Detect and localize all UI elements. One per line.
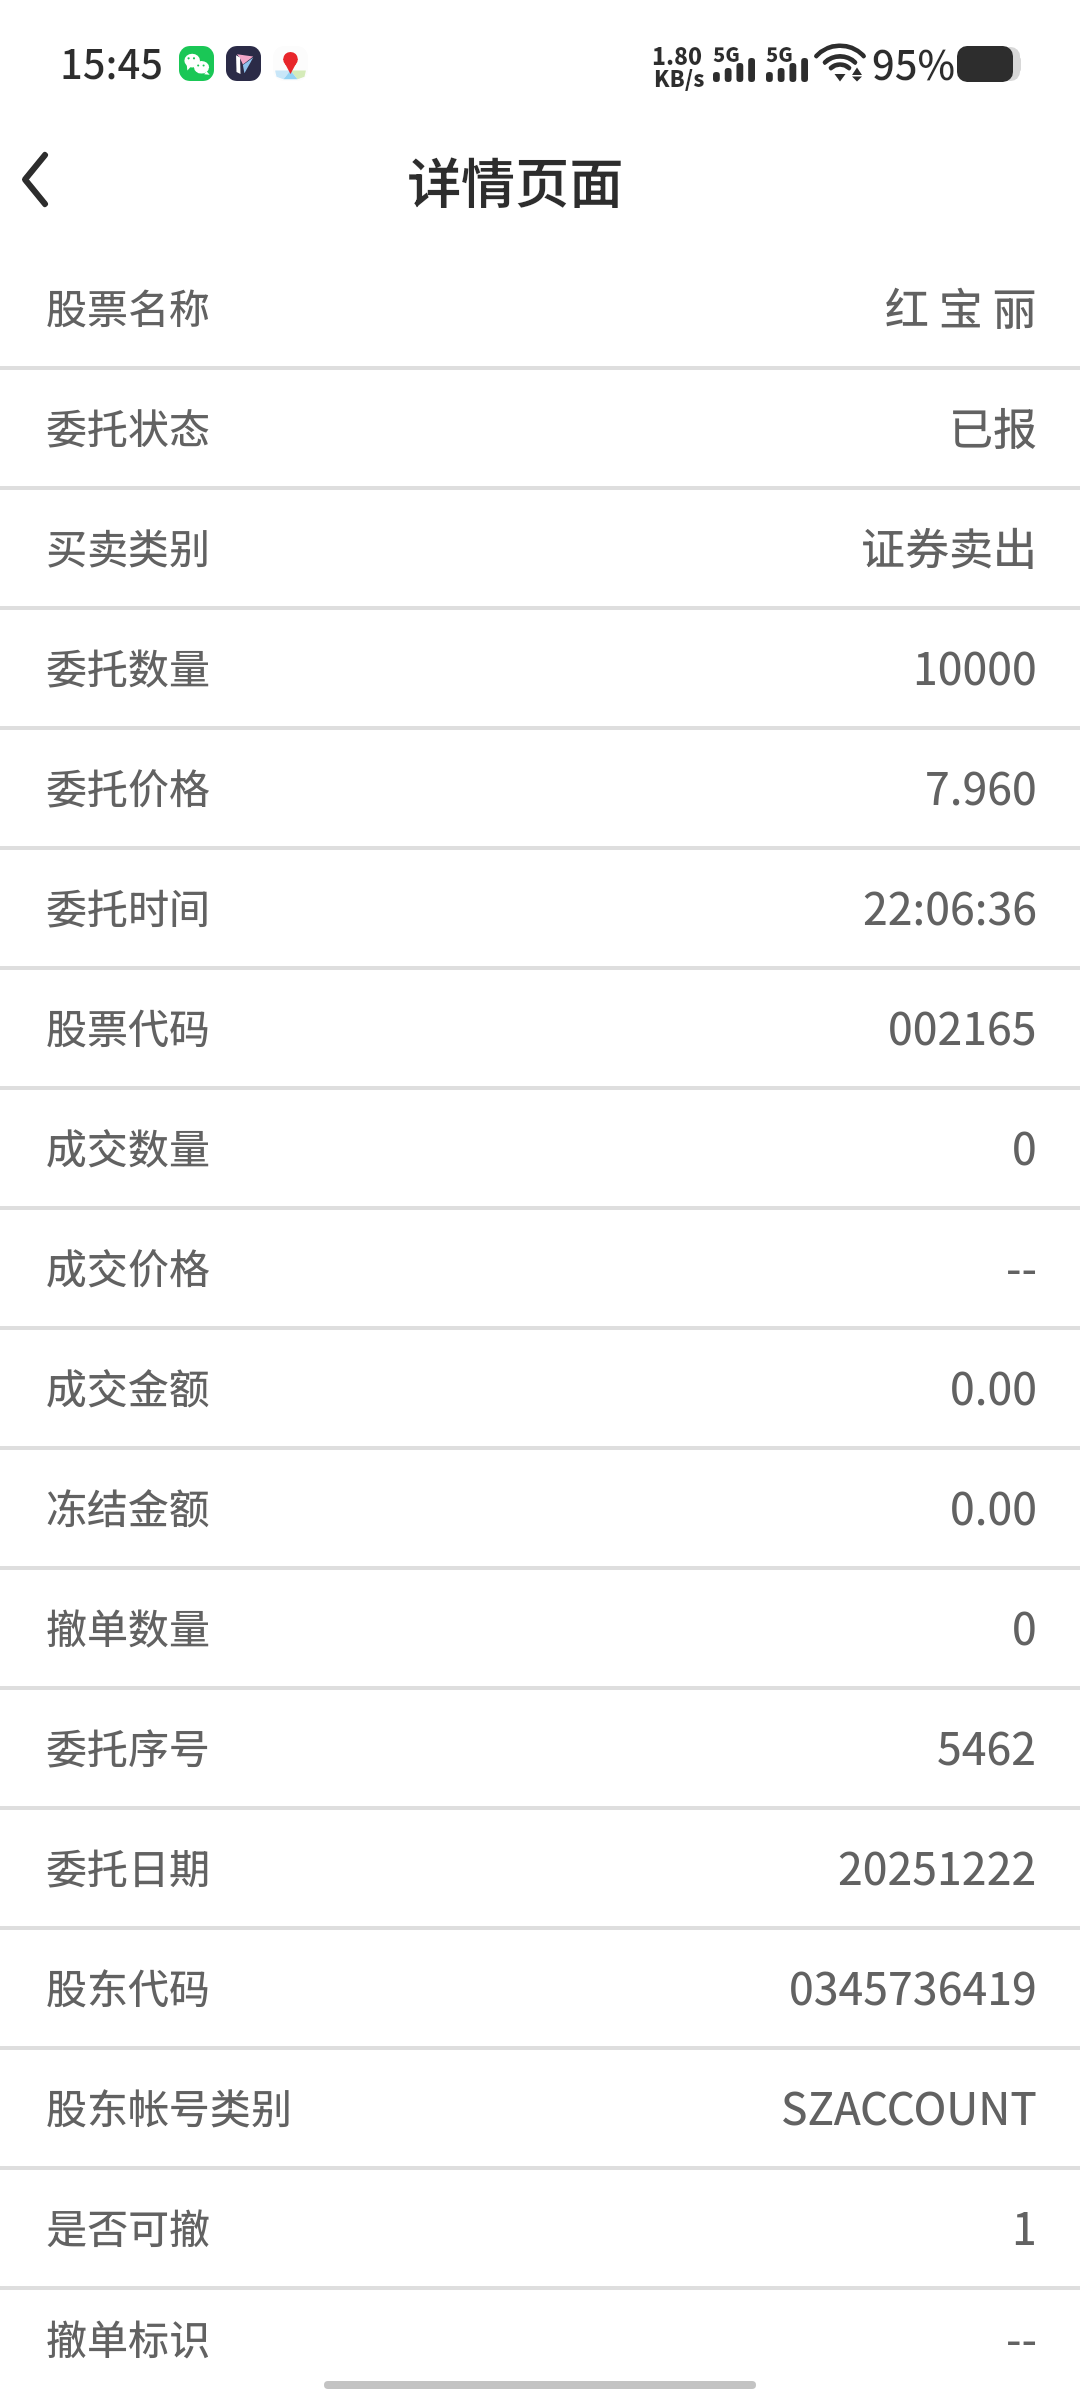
button[interactable]: 委托状态 xyxy=(0,370,1080,490)
staticText: 已报 xyxy=(949,394,1037,458)
staticText: 买卖类别 xyxy=(46,516,210,575)
button[interactable]: 股票代码 xyxy=(0,970,1080,1090)
staticText: 1.80 xyxy=(652,38,703,71)
staticText: 委托时间 xyxy=(46,876,210,935)
staticText: 委托日期 xyxy=(46,1836,210,1895)
staticText: 22:06:36 xyxy=(863,874,1037,938)
button[interactable]: 委托价格 xyxy=(0,730,1080,850)
button[interactable]: 委托序号 xyxy=(0,1690,1080,1810)
staticText: 5G xyxy=(713,39,740,68)
staticText: 15:45 xyxy=(60,33,164,91)
button[interactable]: 委托时间 xyxy=(0,850,1080,970)
button[interactable]: 撤单标识 xyxy=(0,2290,1080,2392)
staticText: 股东帐号类别 xyxy=(46,2076,292,2135)
staticText: 成交价格 xyxy=(46,1236,210,1295)
staticText: 委托价格 xyxy=(46,756,210,815)
button[interactable]: 股东帐号类别 xyxy=(0,2050,1080,2170)
button[interactable]: 是否可撤 xyxy=(0,2170,1080,2290)
staticText: 10000 xyxy=(913,634,1037,698)
staticText: 委托数量 xyxy=(46,636,210,695)
staticText: 股票名称 xyxy=(46,276,210,335)
button[interactable]: 成交金额 xyxy=(0,1330,1080,1450)
button[interactable]: 买卖类别 xyxy=(0,490,1080,610)
staticText: 撤单标识 xyxy=(46,2307,210,2366)
staticText: 0.00 xyxy=(950,1474,1037,1538)
button[interactable]: 撤单数量 xyxy=(0,1570,1080,1690)
staticText: 委托序号 xyxy=(46,1716,210,1775)
staticText: 证券卖出 xyxy=(861,514,1037,578)
staticText: 7.960 xyxy=(925,754,1037,818)
button[interactable]: 股东代码 xyxy=(0,1930,1080,2050)
staticText: 详情页面 xyxy=(407,140,623,218)
staticText: KB/s xyxy=(654,61,705,93)
staticText: 0.00 xyxy=(950,1354,1037,1418)
staticText: 20251222 xyxy=(838,1834,1037,1898)
button[interactable]: 成交数量 xyxy=(0,1090,1080,1210)
button[interactable]: 成交价格 xyxy=(0,1210,1080,1330)
staticText: 002165 xyxy=(888,994,1037,1058)
staticText: 委托状态 xyxy=(46,396,210,455)
staticText: 成交金额 xyxy=(46,1356,210,1415)
staticText: 撤单数量 xyxy=(46,1596,210,1655)
staticText: 0 xyxy=(1012,1594,1037,1658)
staticText: 是否可撤 xyxy=(46,2196,210,2255)
staticText: 1 xyxy=(1012,2194,1037,2258)
button[interactable]: Back xyxy=(0,129,70,230)
staticText: 红 宝 丽 xyxy=(885,274,1037,338)
staticText: 股票代码 xyxy=(46,996,210,1055)
staticText: 0345736419 xyxy=(789,1954,1037,2018)
staticText: SZACCOUNT xyxy=(781,2074,1037,2138)
button[interactable]: 委托数量 xyxy=(0,610,1080,730)
staticText: 股东代码 xyxy=(46,1956,210,2015)
button[interactable]: 委托日期 xyxy=(0,1810,1080,1930)
staticText: 冻结金额 xyxy=(46,1476,210,1535)
staticText: 成交数量 xyxy=(46,1116,210,1175)
staticText: 95% xyxy=(872,34,956,92)
staticText: -- xyxy=(1006,1234,1037,1298)
staticText: 5G xyxy=(766,39,793,68)
button[interactable]: 冻结金额 xyxy=(0,1450,1080,1570)
button[interactable]: 股票名称 xyxy=(0,250,1080,370)
staticText: 0 xyxy=(1012,1114,1037,1178)
staticText: -- xyxy=(1006,2305,1037,2369)
staticText: 5462 xyxy=(937,1714,1037,1778)
